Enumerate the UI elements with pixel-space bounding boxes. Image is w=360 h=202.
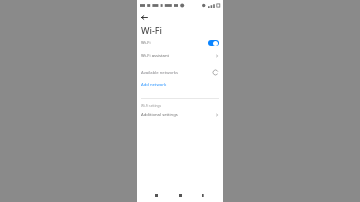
staticText: Additional settings (141, 112, 178, 118)
button[interactable]: Refresh (212, 69, 219, 76)
staticText: Wi-Fi (141, 24, 162, 36)
staticText: Wi-Fi assistant (141, 53, 170, 59)
button[interactable]: Back (140, 13, 149, 22)
button[interactable]: Add network (137, 79, 223, 90)
staticText: Wi-Fi settings (141, 104, 162, 108)
button[interactable]: Home (176, 191, 185, 200)
staticText: Wi-Fi (141, 40, 151, 46)
staticText: Add network (141, 82, 167, 88)
button[interactable]: Back (199, 191, 208, 200)
staticText: Available networks (141, 70, 179, 76)
button[interactable]: Additional settings (137, 108, 223, 121)
button[interactable]: Wi-Fi assistant (137, 49, 223, 62)
button[interactable]: Wi-Fi (137, 36, 223, 49)
button[interactable]: Recents (152, 191, 161, 200)
